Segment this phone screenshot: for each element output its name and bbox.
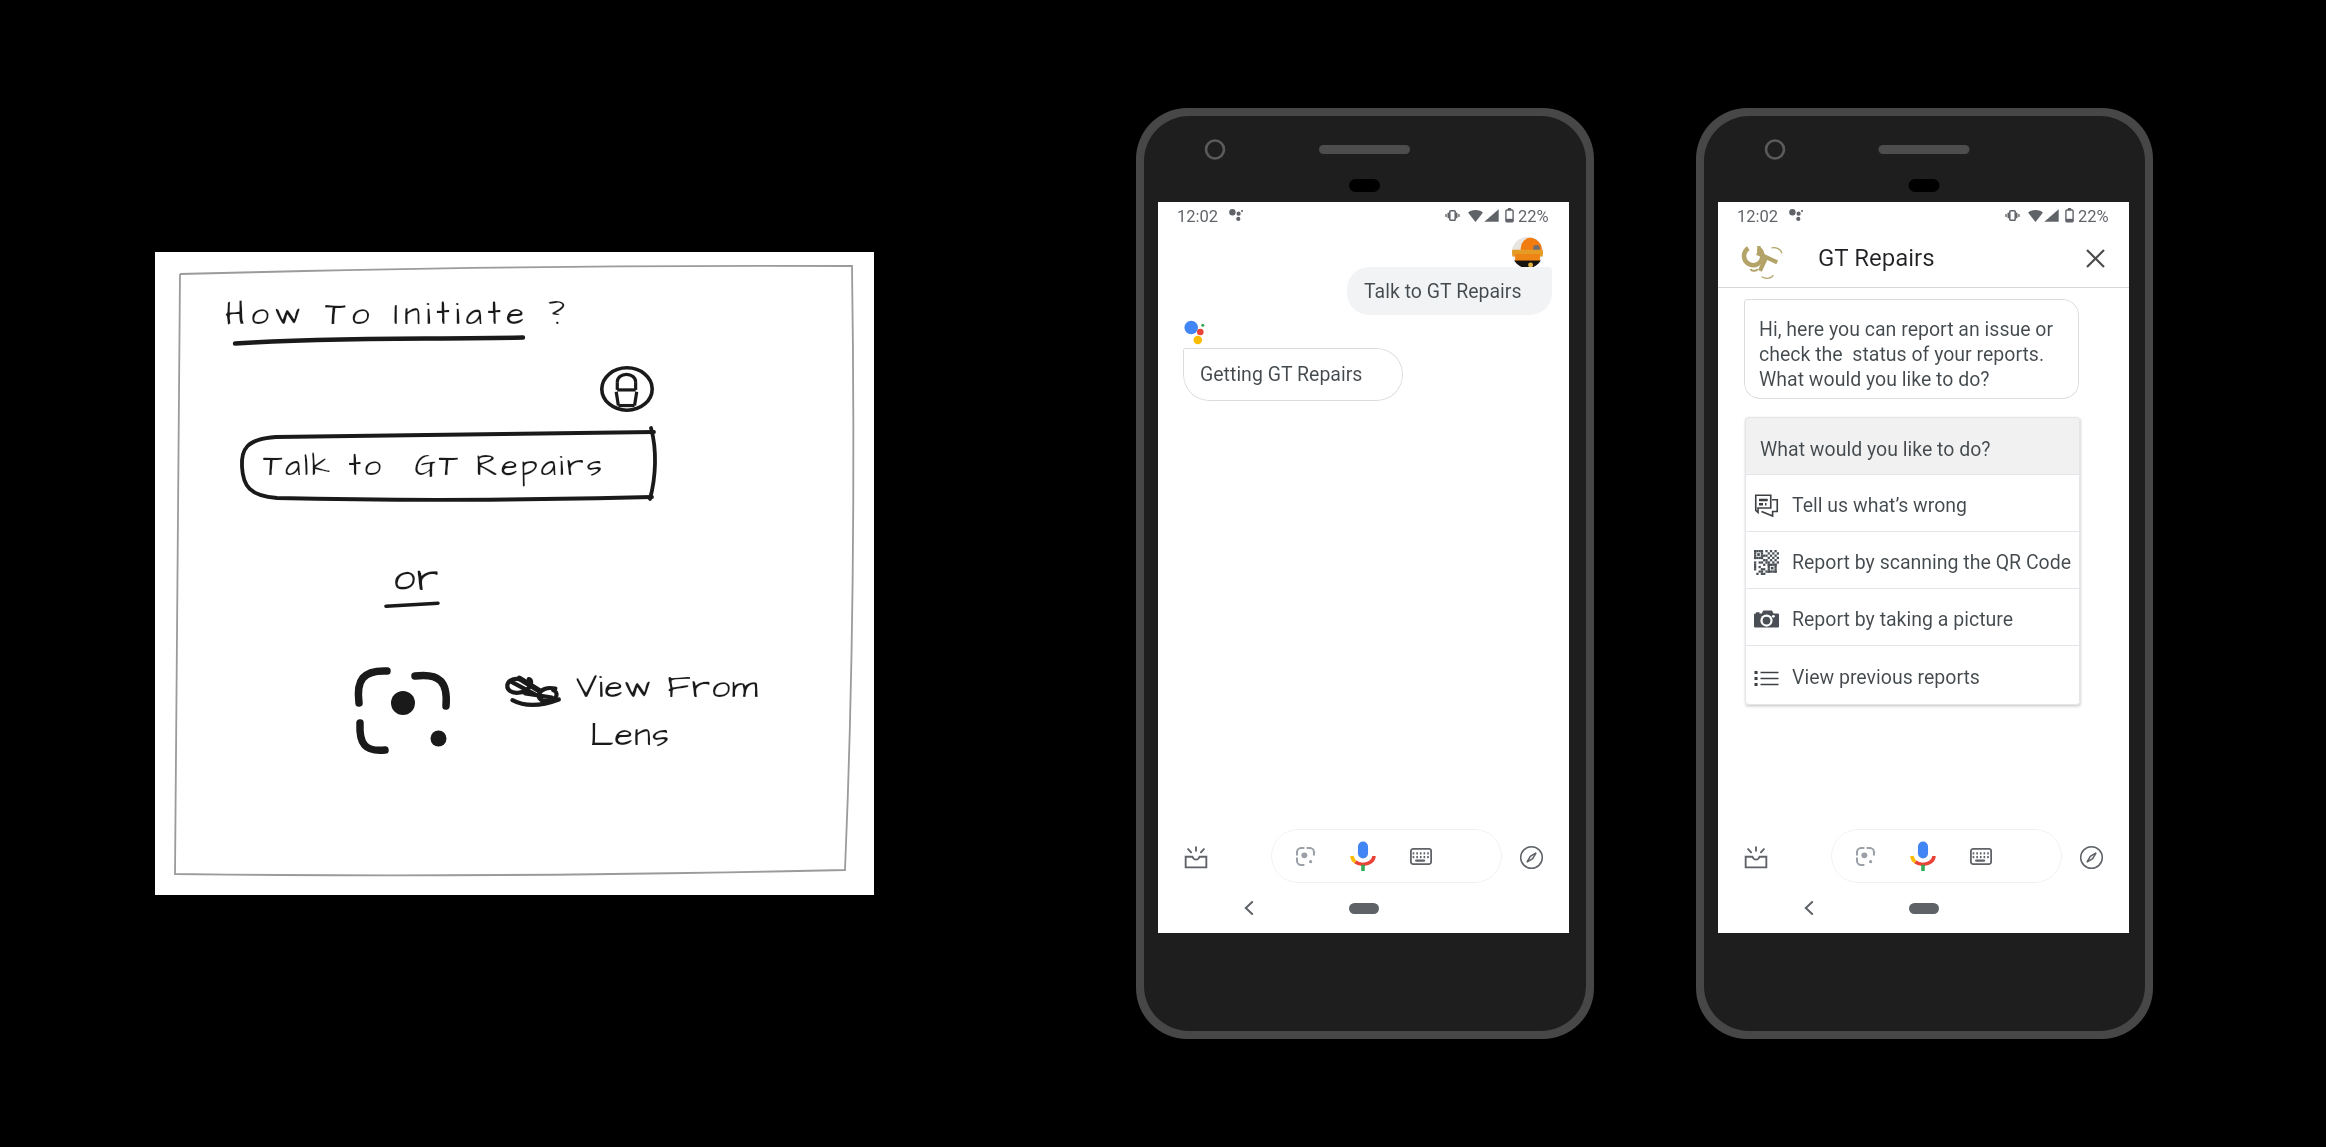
staticText: GT Repairs [1818, 244, 1935, 272]
staticText: 22% [1518, 207, 1549, 226]
staticText: Talk to GT Repairs [1364, 280, 1522, 303]
button[interactable]: Report by taking a picture [1745, 589, 2080, 645]
staticText: Report by taking a picture [1792, 608, 2014, 631]
staticText: 12:02 [1177, 207, 1219, 226]
staticText: Getting GT Repairs [1200, 363, 1363, 386]
button[interactable]: Back [1795, 894, 1823, 922]
button[interactable]: Talk to GT Repairs [1347, 267, 1552, 315]
staticText: What would you like to do? [1760, 438, 1991, 461]
button[interactable]: Explore [1515, 841, 1547, 873]
button[interactable]: Google Lens [1845, 836, 1885, 876]
button[interactable]: Keyboard [1401, 836, 1441, 876]
staticText: Tell us what’s wrong [1792, 494, 1968, 517]
staticText: or [393, 551, 440, 607]
staticText: Lens [590, 711, 671, 758]
button[interactable]: Snapshot [1740, 841, 1772, 873]
staticText: 22% [2078, 207, 2109, 226]
staticText: View previous reports [1792, 666, 1980, 689]
button[interactable]: Report by scanning the QR Code [1745, 532, 2080, 588]
button[interactable]: Hi, here you can report an issue or chec… [1744, 299, 2079, 399]
button[interactable]: Snapshot [1180, 841, 1212, 873]
button[interactable]: Getting GT Repairs [1183, 348, 1403, 401]
button[interactable]: Back [1235, 894, 1263, 922]
button[interactable]: Home [1349, 903, 1379, 914]
button[interactable]: Voice search [1903, 836, 1943, 876]
staticText: How To Initiate ? [225, 291, 571, 337]
button[interactable]: Home [1909, 903, 1939, 914]
button[interactable]: What would you like to do? [1745, 417, 2080, 474]
button[interactable]: Google Lens [1285, 836, 1325, 876]
staticText: Hi, here you can report an issue or chec… [1759, 318, 2054, 390]
button[interactable]: Keyboard [1961, 836, 2001, 876]
button[interactable]: View previous reports [1745, 646, 2080, 705]
button[interactable]: Explore [2075, 841, 2107, 873]
staticText: 12:02 [1737, 207, 1779, 226]
button[interactable]: Tell us what’s wrong [1745, 475, 2080, 531]
staticText: Talk to GT Repairs [263, 444, 605, 487]
staticText: View From [576, 663, 759, 710]
button[interactable]: Voice search [1343, 836, 1383, 876]
staticText: Report by scanning the QR Code [1792, 551, 2072, 574]
button[interactable]: Profile [1512, 237, 1543, 268]
button[interactable]: Close [2073, 236, 2117, 280]
